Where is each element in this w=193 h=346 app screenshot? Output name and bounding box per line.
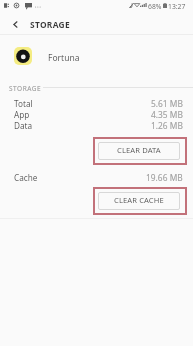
button[interactable]: Total bbox=[0, 98, 193, 109]
staticText: Cache bbox=[14, 172, 38, 183]
staticText: Total bbox=[14, 98, 33, 109]
button[interactable]: Back bbox=[2, 11, 28, 37]
button[interactable]: App bbox=[0, 109, 193, 120]
staticText: 13:27 bbox=[168, 2, 186, 11]
staticText: App bbox=[14, 109, 30, 120]
staticText: 68% bbox=[148, 2, 162, 11]
staticText: 5.61 MB bbox=[151, 98, 183, 109]
button[interactable]: Fortuna bbox=[0, 35, 193, 69]
button[interactable]: Cache bbox=[0, 172, 193, 183]
staticText: Data bbox=[14, 120, 33, 131]
staticText: CLEAR CACHE bbox=[114, 195, 164, 205]
staticText: STORAGE bbox=[30, 19, 70, 30]
staticText: 19.66 MB bbox=[146, 172, 183, 183]
staticText: 1.26 MB bbox=[151, 120, 183, 131]
button[interactable]: Data bbox=[0, 120, 193, 131]
staticText: Fortuna bbox=[48, 52, 80, 64]
button[interactable]: CLEAR DATA bbox=[93, 137, 187, 165]
staticText: STORAGE bbox=[9, 84, 42, 93]
staticText: CLEAR DATA bbox=[117, 145, 161, 155]
staticText: 4.35 MB bbox=[151, 109, 183, 120]
button[interactable]: CLEAR CACHE bbox=[93, 187, 187, 215]
